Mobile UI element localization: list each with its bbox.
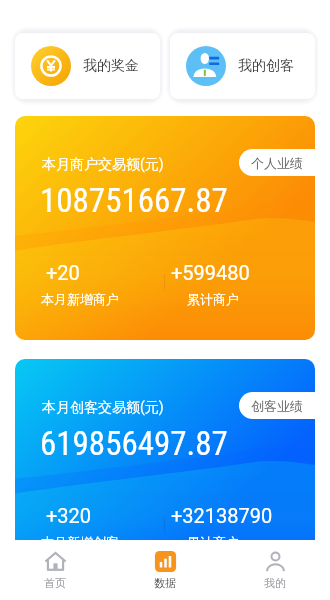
button[interactable]: 个人业绩	[239, 149, 315, 176]
button[interactable]: 创客业绩	[15, 359, 315, 583]
staticText: 我的	[264, 576, 286, 590]
staticText: 个人业绩	[251, 155, 303, 171]
staticText: 619856497.87	[40, 424, 228, 463]
staticText: 我的创客	[238, 57, 294, 75]
staticText: 数据	[154, 576, 176, 590]
staticText: +32138790	[171, 504, 273, 527]
staticText: +320	[46, 504, 92, 527]
staticText: +599480	[171, 261, 250, 284]
button[interactable]: 首页	[0, 540, 110, 600]
staticText: 累计商户	[187, 534, 239, 550]
staticText: 累计商户	[187, 291, 239, 307]
staticText: 108751667.87	[40, 181, 228, 220]
staticText: 本月商户交易额(元)	[42, 156, 164, 174]
staticText: 创客业绩	[251, 398, 303, 414]
other: 我的创客	[186, 46, 226, 86]
button[interactable]: 我的创客	[170, 33, 315, 99]
staticText: 我的奖金	[83, 57, 139, 75]
button[interactable]: 个人业绩	[15, 116, 315, 340]
staticText: 本月创客交易额(元)	[42, 399, 164, 417]
button[interactable]: 我的	[220, 540, 330, 600]
staticText: +20	[46, 261, 80, 284]
button[interactable]: 数据	[110, 540, 220, 600]
staticText: 本月新增创客	[41, 534, 119, 550]
button[interactable]: 我的奖金	[15, 33, 160, 99]
other: 我的奖金	[31, 46, 71, 86]
button[interactable]: 创客业绩	[239, 392, 315, 419]
staticText: 本月新增商户	[41, 291, 119, 307]
staticText: 首页	[44, 576, 66, 590]
